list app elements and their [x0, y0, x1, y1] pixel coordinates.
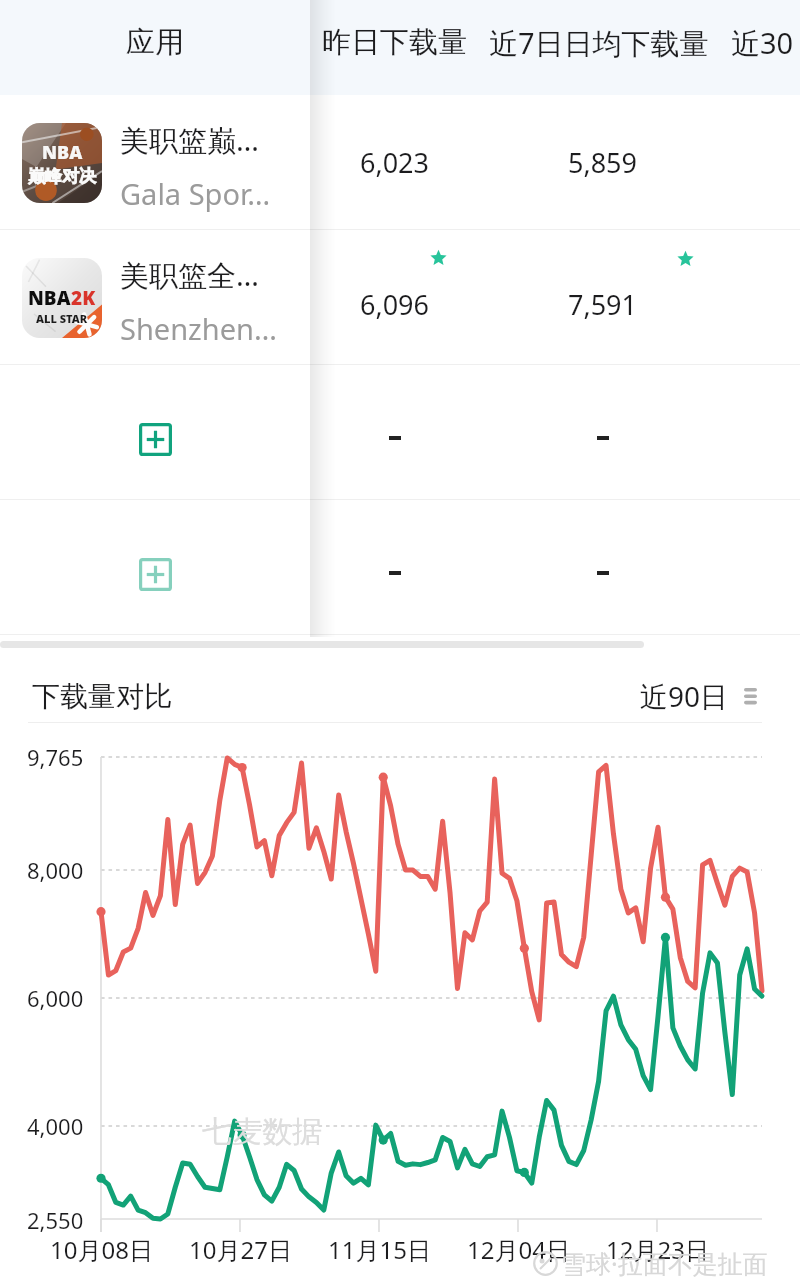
button[interactable]: NBA	[0, 230, 310, 365]
staticText: 5,859	[568, 144, 638, 181]
staticText: 近30	[731, 23, 794, 63]
staticText: NBA	[28, 285, 71, 311]
staticText: NBA	[42, 140, 83, 165]
button[interactable]: NBA	[0, 95, 310, 230]
staticText: 巅峰对决	[28, 166, 96, 187]
button[interactable]: Add app	[0, 500, 310, 635]
staticText: 11月15日	[328, 1233, 431, 1266]
staticText: ALL STAR	[36, 311, 88, 326]
button[interactable]: 6,023	[0, 95, 800, 230]
staticText: 2,550	[27, 1205, 84, 1235]
staticText: 2K	[71, 285, 96, 311]
button[interactable]	[0, 500, 800, 635]
staticText: 下载量对比	[32, 679, 172, 714]
staticText: 10月27日	[189, 1233, 292, 1266]
other: Chart options	[744, 685, 757, 707]
staticText: 12月04日	[467, 1233, 570, 1266]
staticText: 8,000	[27, 855, 84, 885]
staticText: 七麦数据	[202, 1113, 322, 1151]
staticText: 6,096	[360, 286, 430, 323]
staticText: 近7日日均下载量	[489, 23, 709, 63]
button[interactable]: 6,096	[0, 230, 800, 365]
staticText: 9,765	[27, 742, 84, 772]
staticText: 近90日	[640, 677, 729, 715]
staticText: 应用	[126, 24, 184, 61]
button[interactable]	[0, 365, 800, 500]
staticText: 昨日下载量	[322, 24, 467, 61]
staticText: 美职篮全…	[120, 255, 259, 295]
staticText: 7,591	[568, 286, 638, 323]
staticText: Shenzhen…	[120, 309, 277, 348]
staticText: 雪球·拉面不是扯面	[561, 1246, 768, 1280]
staticText: 12月23日	[606, 1233, 709, 1266]
button[interactable]: 近90日	[640, 677, 757, 715]
staticText: Gala Spor…	[120, 174, 271, 213]
staticText: 6,023	[360, 144, 430, 181]
staticText: 6,000	[27, 983, 84, 1013]
staticText: 美职篮巅…	[120, 120, 259, 160]
staticText: 4,000	[27, 1111, 84, 1141]
button[interactable]: Add app	[0, 365, 310, 500]
staticText: 10月08日	[50, 1233, 153, 1266]
